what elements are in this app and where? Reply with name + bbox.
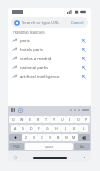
staticText: U xyxy=(61,117,64,122)
button[interactable]: T xyxy=(42,116,50,123)
button[interactable]: K xyxy=(70,125,79,132)
button[interactable]: F xyxy=(35,125,43,132)
staticText: T xyxy=(45,117,47,122)
button[interactable]: S xyxy=(19,125,27,132)
button[interactable]: H xyxy=(52,125,61,132)
staticText: hotels paris xyxy=(20,47,79,53)
button[interactable]: Voice input xyxy=(17,107,23,113)
button[interactable]: Backspace xyxy=(78,134,90,141)
button[interactable]: R xyxy=(34,116,42,123)
staticText: O xyxy=(77,117,80,122)
button[interactable]: Cancel xyxy=(70,19,85,26)
staticText: M xyxy=(72,135,76,140)
button[interactable]: I xyxy=(66,116,74,123)
staticText: F xyxy=(38,126,40,131)
button[interactable]: P xyxy=(82,116,90,123)
button[interactable]: paris xyxy=(8,36,91,45)
button[interactable]: Search engine icon xyxy=(11,17,88,28)
other: Search engine icon xyxy=(14,20,20,26)
staticText: X xyxy=(33,135,36,140)
button[interactable]: V xyxy=(46,134,54,141)
button[interactable]: national parks xyxy=(8,63,91,72)
button[interactable]: Insert suggestion xyxy=(81,47,87,53)
button[interactable]: B xyxy=(54,134,62,141)
staticText: B xyxy=(57,135,60,140)
staticText: artificial intelligence xyxy=(20,74,79,80)
button[interactable]: ?123 xyxy=(9,143,24,150)
button[interactable]: Y xyxy=(50,116,58,123)
staticText: ?123 xyxy=(13,145,20,149)
button[interactable]: Insert suggestion xyxy=(81,56,87,62)
staticText: TRENDING SEARCHES xyxy=(13,31,45,35)
button[interactable]: Insert suggestion xyxy=(81,38,87,44)
staticText: national parks xyxy=(20,65,79,71)
staticText: Cancel xyxy=(71,20,84,25)
staticText: L xyxy=(83,126,85,131)
button[interactable]: Shift xyxy=(9,134,22,141)
staticText: W xyxy=(20,117,24,122)
staticText: Z xyxy=(25,135,28,140)
staticText: K xyxy=(73,126,76,131)
button[interactable]: G xyxy=(43,125,52,132)
staticText: R xyxy=(37,117,40,122)
button[interactable]: Q xyxy=(9,116,18,123)
button[interactable]: A xyxy=(11,125,19,132)
staticText: D xyxy=(30,126,33,131)
staticText: Search or type URL xyxy=(22,20,68,26)
button[interactable]: M xyxy=(70,134,78,141)
button[interactable]: Z xyxy=(22,134,30,141)
staticText: paris xyxy=(20,38,79,44)
button[interactable]: Insert suggestion xyxy=(81,74,87,80)
button[interactable]: E xyxy=(26,116,34,123)
button[interactable]: U xyxy=(58,116,66,123)
button[interactable]: J xyxy=(61,125,70,132)
button[interactable]: Keyboard settings xyxy=(10,107,16,113)
button[interactable]: Go xyxy=(74,143,90,150)
button[interactable]: W xyxy=(18,116,26,123)
staticText: N xyxy=(65,135,68,140)
staticText: H xyxy=(55,126,58,131)
button[interactable]: O xyxy=(74,116,82,123)
staticText: C xyxy=(41,135,44,140)
staticText: Go xyxy=(80,145,84,149)
staticText: A xyxy=(14,126,17,131)
button[interactable]: space xyxy=(25,143,73,150)
staticText: S xyxy=(22,126,24,131)
staticText: J xyxy=(65,126,66,131)
button[interactable]: C xyxy=(38,134,46,141)
staticText: space xyxy=(45,145,54,149)
button[interactable]: N xyxy=(62,134,70,141)
button[interactable]: artificial intelligence xyxy=(8,72,91,81)
staticText: Y xyxy=(53,117,56,122)
button[interactable]: Emoji xyxy=(13,155,17,159)
staticText: V xyxy=(49,135,52,140)
staticText: vuelos a madrid xyxy=(20,56,79,62)
staticText: I xyxy=(69,117,71,122)
button[interactable]: Insert suggestion xyxy=(81,65,87,71)
staticText: G xyxy=(46,126,49,131)
button[interactable]: hotels paris xyxy=(8,45,91,54)
button[interactable]: vuelos a madrid xyxy=(8,54,91,63)
staticText: E xyxy=(29,117,31,122)
staticText: Q xyxy=(12,117,15,122)
button[interactable]: X xyxy=(30,134,38,141)
button[interactable]: L xyxy=(79,125,88,132)
staticText: P xyxy=(85,117,88,122)
button[interactable]: Keyboard hide xyxy=(82,155,86,159)
button[interactable]: D xyxy=(27,125,35,132)
